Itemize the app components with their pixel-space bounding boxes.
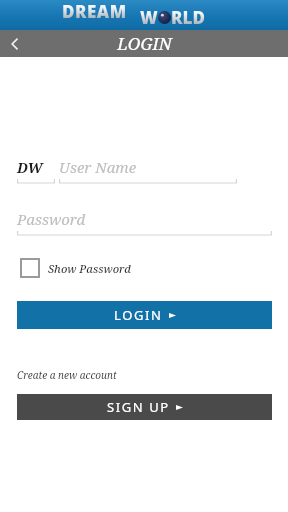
staticText: LOGIN	[117, 32, 172, 55]
staticText: W	[140, 6, 158, 29]
staticText: RLD	[171, 6, 205, 29]
button[interactable]: Back	[0, 30, 30, 57]
button[interactable]: Show Password	[20, 258, 131, 278]
button[interactable]: SIGN UP	[17, 394, 272, 420]
button[interactable]: User Name	[59, 156, 237, 184]
staticText: Show Password	[48, 261, 131, 276]
button[interactable]: Password	[17, 208, 272, 236]
staticText: SIGN UP	[107, 398, 170, 416]
staticText: Password	[17, 209, 86, 229]
staticText: LOGIN	[114, 306, 163, 324]
staticText: User Name	[59, 157, 137, 177]
staticText: DREAM	[62, 0, 127, 23]
button[interactable]: LOGIN	[17, 301, 272, 329]
staticText: DW	[17, 158, 43, 177]
staticText: Create a new account	[17, 368, 117, 382]
